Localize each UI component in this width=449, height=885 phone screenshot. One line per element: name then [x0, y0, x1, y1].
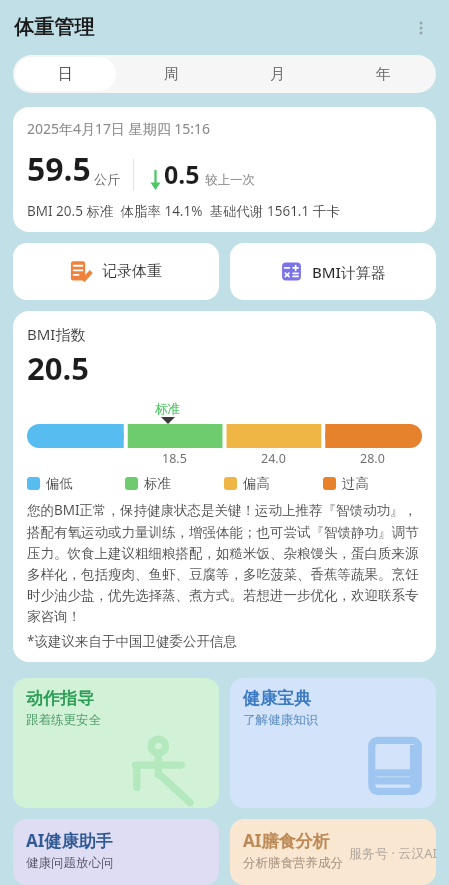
staticText: 月 — [270, 65, 285, 84]
staticText: 2025年4月17日 星期四 15:16 — [27, 119, 211, 138]
staticText: 偏低 — [46, 475, 73, 492]
staticText: BMI 20.5 标准 体脂率 14.1% 基础代谢 1561.1 千卡 — [27, 202, 340, 220]
staticText: 公斤 — [94, 171, 120, 187]
staticText: 0.5 — [164, 157, 200, 191]
button[interactable]: 日 — [15, 57, 116, 91]
button[interactable]: 2025年4月17日 星期四 15:16 — [13, 107, 436, 232]
staticText: 健康问题放心问 — [26, 855, 114, 871]
button[interactable]: 年 — [332, 57, 434, 91]
staticText: BMI计算器 — [312, 262, 386, 282]
staticText: 了解健康知识 — [243, 712, 318, 728]
button[interactable]: 记录体重 — [13, 243, 219, 300]
staticText: AI健康助手 — [26, 829, 113, 852]
staticText: AI膳食分析 — [243, 829, 330, 852]
staticText: *该建议来自于中国卫健委公开信息 — [27, 632, 237, 650]
button[interactable]: More options — [401, 8, 441, 48]
staticText: 动作指导 — [26, 688, 94, 709]
button[interactable]: AI健康助手 — [13, 819, 219, 885]
staticText: 59.5 — [27, 147, 91, 191]
staticText: 您的BMI正常，保持健康状态是关键！运动上推荐『智馈动功』，搭配有氧运动或力量训… — [27, 501, 422, 625]
staticText: 记录体重 — [102, 262, 162, 281]
staticText: 18.5 — [162, 450, 187, 467]
staticText: 20.5 — [27, 347, 89, 389]
staticText: 过高 — [342, 475, 369, 492]
button[interactable]: AI膳食分析 — [230, 819, 436, 885]
staticText: 年 — [376, 65, 391, 84]
staticText: 体重管理 — [14, 15, 94, 40]
button[interactable]: 月 — [226, 57, 328, 91]
staticText: 标准 — [155, 401, 180, 417]
staticText: 健康宝典 — [243, 688, 311, 709]
staticText: 分析膳食营养成分 — [243, 855, 343, 871]
button[interactable]: 健康宝典 — [230, 678, 436, 808]
staticText: 服务号 · 云汉AI — [349, 844, 437, 862]
staticText: 偏高 — [243, 475, 270, 492]
staticText: 较上一次 — [205, 172, 255, 188]
staticText: 28.0 — [360, 450, 385, 467]
button[interactable]: 周 — [120, 57, 222, 91]
staticText: 周 — [164, 65, 179, 84]
button[interactable]: BMI计算器 — [230, 243, 436, 300]
staticText: 24.0 — [261, 450, 286, 467]
button[interactable]: 动作指导 — [13, 678, 219, 808]
staticText: 日 — [58, 65, 73, 84]
staticText: BMI指数 — [27, 324, 86, 344]
staticText: 跟着练更安全 — [26, 712, 101, 728]
staticText: 标准 — [144, 475, 171, 492]
